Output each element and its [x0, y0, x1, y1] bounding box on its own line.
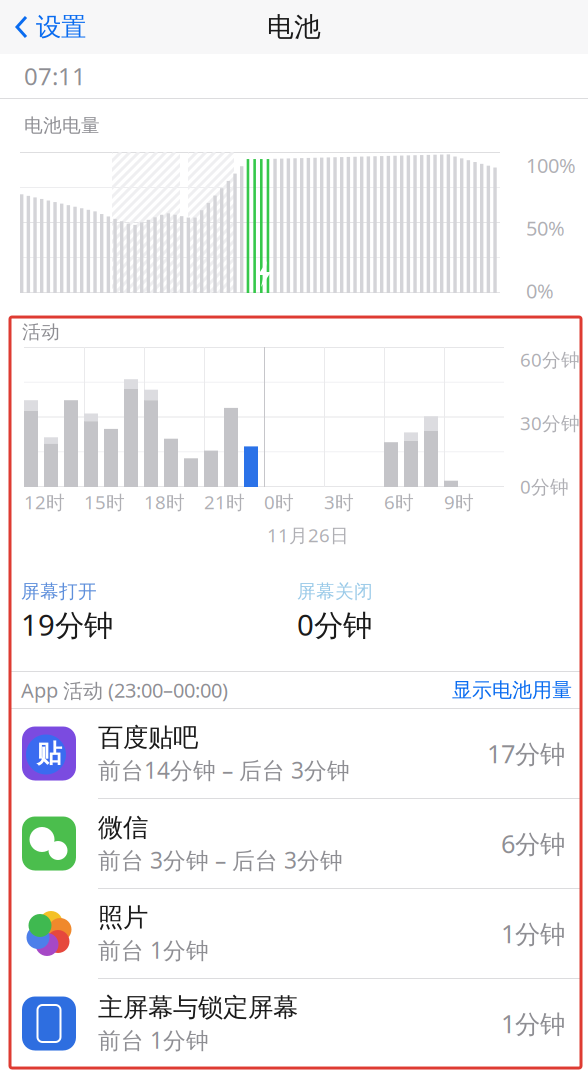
- staticText: 显示电池用量: [452, 678, 572, 702]
- staticText: 0分钟: [520, 474, 569, 499]
- staticText: 1分钟: [501, 917, 565, 950]
- staticText: 1分钟: [501, 1007, 565, 1040]
- staticText: 19分钟: [21, 605, 113, 644]
- button[interactable]: 贴: [10, 709, 581, 798]
- staticText: 主屏幕与锁定屏幕: [98, 992, 298, 1023]
- button[interactable]: 显示电池用量: [452, 678, 572, 702]
- staticText: 贴: [36, 738, 61, 769]
- staticText: 6分钟: [501, 827, 565, 860]
- staticText: 电池: [267, 11, 321, 43]
- staticText: 前台 3分钟 – 后台 3分钟: [98, 845, 343, 875]
- button[interactable]: 主屏幕与锁定屏幕: [10, 979, 581, 1068]
- staticText: 前台 1分钟: [98, 1025, 209, 1055]
- staticText: 设置: [36, 11, 86, 42]
- staticText: 50%: [526, 215, 565, 241]
- staticText: 17分钟: [487, 737, 565, 770]
- staticText: 18时: [144, 490, 185, 514]
- staticText: 电池电量: [24, 114, 100, 137]
- staticText: 前台14分钟 – 后台 3分钟: [98, 755, 350, 785]
- staticText: 百度贴吧: [98, 722, 198, 753]
- button[interactable]: 照片: [10, 889, 581, 978]
- staticText: 30分钟: [520, 411, 580, 435]
- staticText: 07:11: [24, 60, 86, 92]
- staticText: 12时: [24, 490, 65, 514]
- button[interactable]: 微信: [10, 799, 581, 888]
- staticText: 屏幕关闭: [297, 580, 373, 603]
- staticText: 0时: [264, 490, 294, 514]
- staticText: 屏幕打开: [21, 580, 97, 603]
- staticText: 21时: [204, 490, 245, 514]
- staticText: 微信: [98, 812, 148, 843]
- staticText: 100%: [526, 152, 576, 179]
- staticText: 6时: [384, 490, 414, 514]
- button[interactable]: 设置: [0, 3, 98, 50]
- staticText: 0%: [526, 277, 554, 304]
- staticText: 0分钟: [297, 605, 372, 644]
- staticText: 60分钟: [520, 347, 580, 372]
- staticText: 照片: [98, 902, 148, 933]
- staticText: App 活动 (23:00–00:00): [21, 677, 228, 703]
- staticText: 9时: [444, 490, 474, 514]
- staticText: 前台 1分钟: [98, 935, 209, 965]
- staticText: 11月26日: [267, 523, 349, 547]
- staticText: 3时: [324, 490, 354, 514]
- staticText: 15时: [84, 490, 125, 514]
- staticText: 活动: [22, 320, 60, 343]
